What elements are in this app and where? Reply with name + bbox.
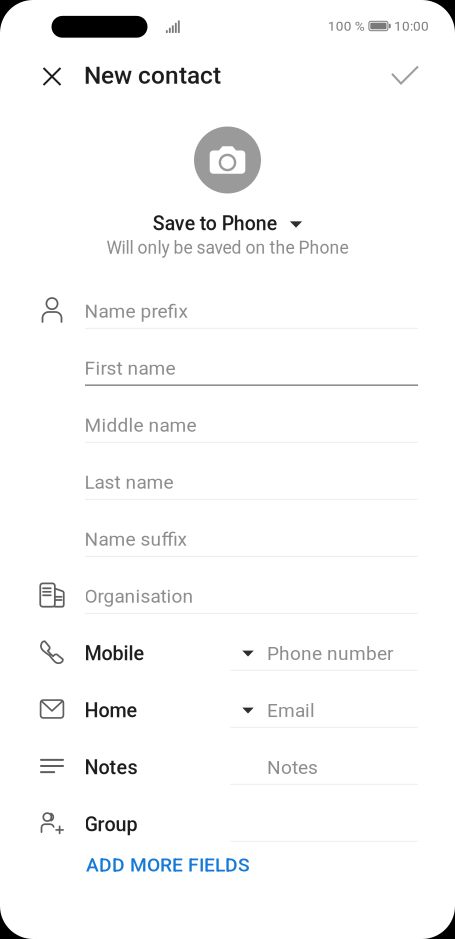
staticText: Mobile: [84, 642, 144, 665]
button[interactable]: Name prefix: [0, 272, 455, 329]
staticText: Organisation: [84, 585, 193, 607]
staticText: 100 %: [328, 18, 365, 34]
staticText: Last name: [84, 471, 173, 493]
staticText: Notes: [84, 756, 137, 779]
staticText: First name: [84, 357, 175, 379]
button[interactable]: First name: [0, 329, 455, 386]
staticText: Name suffix: [84, 528, 186, 550]
button[interactable]: Close: [29, 54, 75, 102]
button[interactable]: ADD MORE FIELDS: [0, 842, 455, 888]
button[interactable]: Mobile: [0, 614, 455, 671]
staticText: Notes: [267, 756, 318, 779]
button[interactable]: Organisation: [0, 557, 455, 614]
staticText: Home: [84, 699, 137, 722]
button[interactable]: Add photo: [194, 126, 261, 193]
staticText: Save to Phone: [153, 212, 277, 235]
staticText: Middle name: [84, 414, 196, 436]
button[interactable]: Group: [0, 785, 455, 842]
button[interactable]: Save to Phone: [153, 210, 302, 236]
staticText: New contact: [84, 61, 221, 90]
staticText: Will only be saved on the Phone: [106, 237, 348, 258]
staticText: ADD MORE FIELDS: [86, 854, 250, 876]
button[interactable]: Home: [0, 671, 455, 728]
staticText: 10:00: [394, 18, 429, 34]
button[interactable]: Notes: [0, 728, 455, 785]
staticText: Group: [84, 813, 137, 836]
button[interactable]: Save: [382, 54, 428, 102]
staticText: Name prefix: [84, 300, 187, 322]
button[interactable]: Name suffix: [0, 500, 455, 557]
staticText: Phone number: [267, 642, 393, 665]
button[interactable]: Middle name: [0, 386, 455, 443]
staticText: Email: [267, 699, 315, 722]
button[interactable]: Last name: [0, 443, 455, 500]
